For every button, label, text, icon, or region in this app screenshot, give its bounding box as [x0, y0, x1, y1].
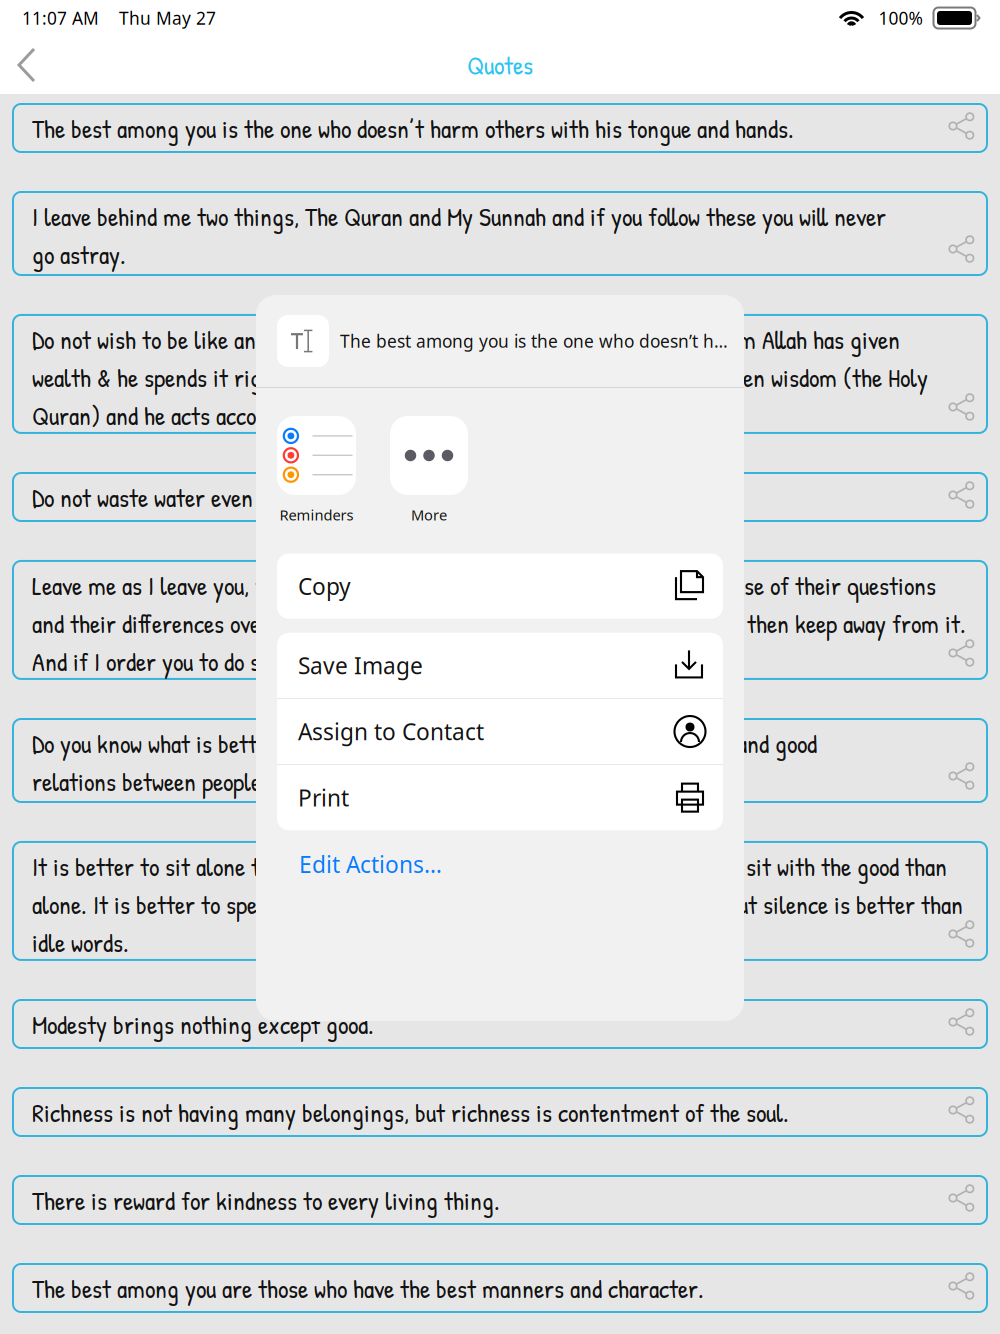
button[interactable]: Assign to Contact [277, 699, 723, 764]
staticText: More [411, 505, 447, 524]
staticText: The best among you are those who have th… [32, 1271, 704, 1306]
button[interactable]: Edit Actions… [256, 846, 744, 882]
button[interactable]: It is better to sit alone than in compan… [13, 842, 987, 960]
staticText: Leave me as I leave you, for the people … [32, 568, 966, 679]
staticText: The best among you is the one who doesn’… [32, 111, 794, 146]
staticText: Richness is not having many belongings, … [32, 1095, 789, 1130]
staticText: Edit Actions… [299, 849, 442, 879]
button[interactable]: Reminders [277, 416, 356, 524]
button[interactable]: Do you know what is better than charity,… [13, 719, 987, 802]
staticText: I leave behind me two things, The Quran … [32, 199, 886, 272]
button[interactable]: Do not waste water even if you were at a… [13, 473, 987, 521]
button[interactable]: Copy [277, 553, 723, 619]
staticText: Reminders [279, 505, 353, 524]
staticText: Modesty brings nothing except good. [32, 1007, 374, 1042]
staticText: 11:07 AM [22, 6, 99, 29]
staticText: There is reward for kindness to every li… [32, 1183, 500, 1218]
button[interactable]: Leave me as I leave you, for the people … [13, 561, 987, 679]
button[interactable]: Richness is not having many belongings, … [13, 1088, 987, 1136]
staticText: Do you know what is better than charity,… [32, 726, 817, 799]
staticText: 100% [878, 6, 922, 29]
button[interactable]: More [390, 416, 468, 524]
button[interactable]: Save Image [277, 633, 723, 698]
staticText: Thu May 27 [119, 6, 216, 29]
staticText: It is better to sit alone than in compan… [32, 849, 963, 960]
staticText: Do not waste water even if you were at a… [32, 480, 559, 515]
button[interactable]: Print [277, 765, 723, 830]
staticText: Do not wish to be like anyone except in … [32, 322, 928, 433]
button[interactable]: The best among you is the one who doesn’… [13, 104, 987, 152]
button[interactable]: The best among you are those who have th… [13, 1264, 987, 1312]
button[interactable]: Do not wish to be like anyone except in … [13, 315, 987, 433]
staticText: Copy [298, 571, 351, 601]
staticText: Save Image [298, 650, 423, 680]
button[interactable]: Modesty brings nothing except good. [13, 1000, 987, 1048]
staticText: The best among you is the one who doesn’… [340, 329, 732, 352]
button[interactable]: I leave behind me two things, The Quran … [13, 192, 987, 275]
staticText: Assign to Contact [298, 716, 484, 747]
staticText: Quotes [467, 47, 533, 83]
button[interactable]: Back [0, 38, 58, 92]
staticText: Print [298, 783, 349, 813]
button[interactable]: There is reward for kindness to every li… [13, 1176, 987, 1224]
